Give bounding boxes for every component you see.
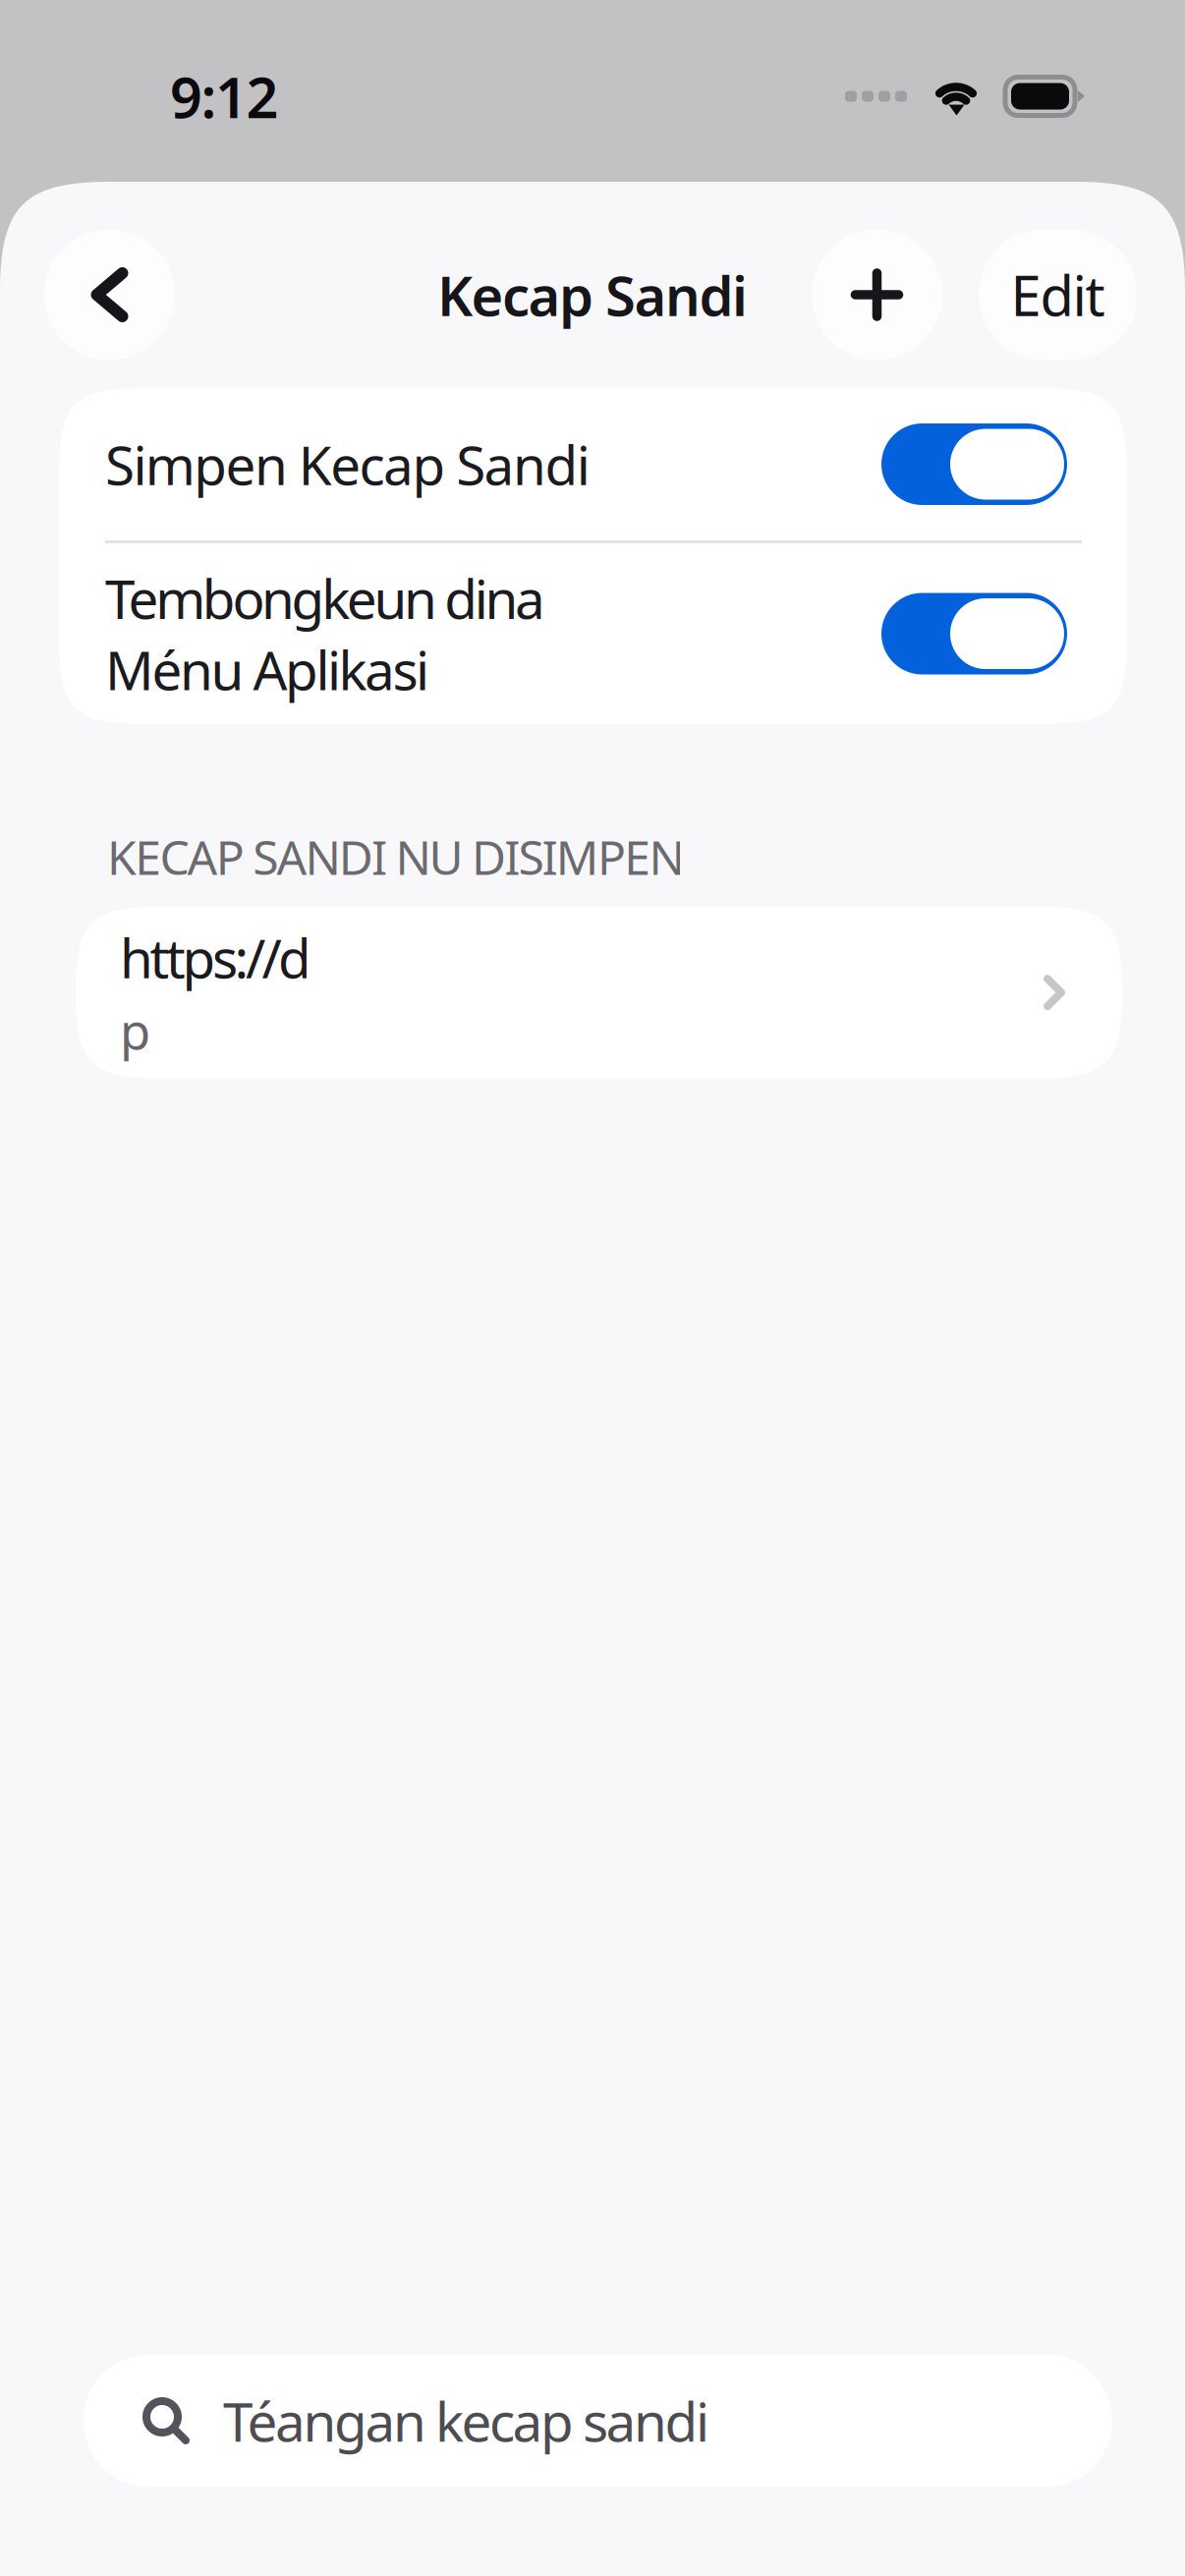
- button[interactable]: Simpen Kecap Sandi: [59, 388, 1127, 540]
- staticText: p: [120, 997, 150, 1063]
- staticText: Edit: [1011, 258, 1105, 331]
- staticText: Kecap Sandi: [437, 258, 748, 331]
- staticText: 9:12: [170, 59, 279, 134]
- staticText: Ménu Aplikasi: [105, 634, 429, 705]
- staticText: Téangan kecap sandi: [223, 2385, 709, 2456]
- button[interactable]: Back: [44, 229, 175, 360]
- staticText: Tembongkeun dina: [105, 562, 545, 634]
- button[interactable]: Add password: [812, 229, 942, 360]
- staticText: https://d: [120, 922, 311, 993]
- staticText: KECAP SANDI NU DISIMPEN: [107, 825, 684, 888]
- button[interactable]: Edit: [979, 229, 1137, 360]
- staticText: Simpen Kecap Sandi: [105, 429, 590, 500]
- button[interactable]: Téangan kecap sandi: [84, 2355, 1112, 2487]
- button[interactable]: Tembongkeun dina: [59, 543, 1127, 724]
- button[interactable]: https://d: [76, 907, 1122, 1078]
